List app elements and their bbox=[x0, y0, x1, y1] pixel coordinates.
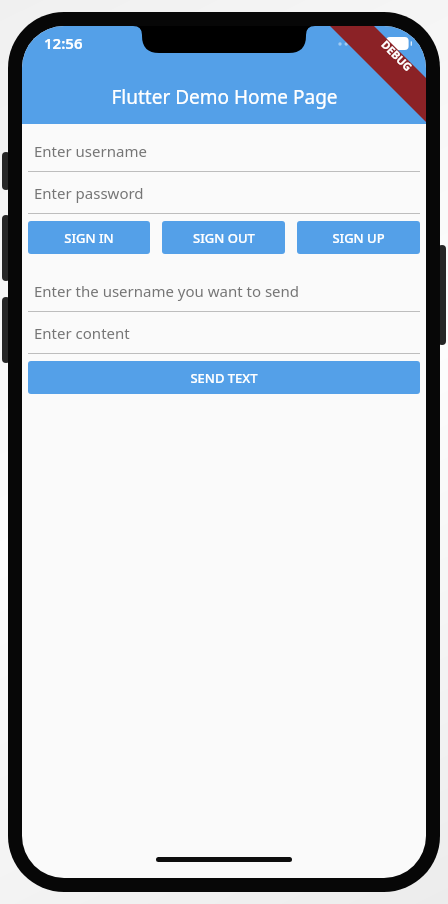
button[interactable]: Enter the username you want to send bbox=[28, 270, 420, 312]
staticText: Flutter Demo Home Page bbox=[111, 84, 338, 110]
button[interactable]: SEND TEXT bbox=[28, 361, 420, 394]
button[interactable]: Enter username bbox=[28, 130, 420, 172]
button[interactable]: SIGN IN bbox=[28, 221, 150, 254]
staticText: DEBUG bbox=[378, 37, 416, 74]
button[interactable]: Enter password bbox=[28, 172, 420, 214]
staticText: SIGN OUT bbox=[193, 229, 255, 247]
staticText: Enter content bbox=[34, 323, 130, 343]
staticText: 12:56 bbox=[44, 33, 83, 53]
staticText: SIGN UP bbox=[332, 229, 385, 247]
staticText: Enter username bbox=[34, 141, 147, 161]
staticText: Enter the username you want to send bbox=[34, 281, 300, 301]
staticText: Enter password bbox=[34, 183, 144, 203]
staticText: SIGN IN bbox=[64, 229, 114, 247]
button[interactable]: SIGN OUT bbox=[162, 221, 285, 254]
staticText: SEND TEXT bbox=[190, 369, 258, 387]
button[interactable]: SIGN UP bbox=[297, 221, 420, 254]
other: Battery bbox=[386, 37, 412, 50]
other: Cellular signal bbox=[337, 40, 358, 48]
button[interactable]: Enter content bbox=[28, 312, 420, 354]
